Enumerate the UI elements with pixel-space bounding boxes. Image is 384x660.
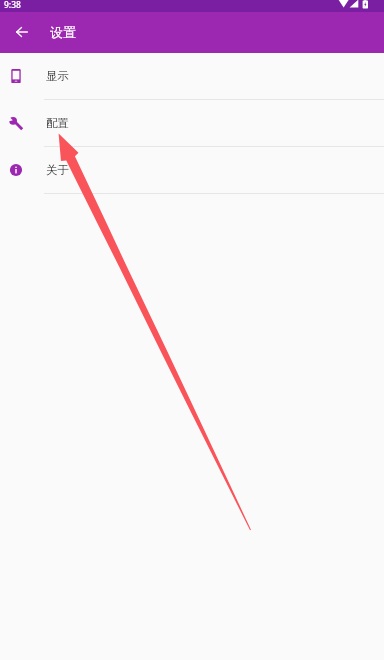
staticText: 显示 — [46, 69, 69, 83]
other: Configure — [0, 116, 32, 130]
button[interactable]: Display — [0, 53, 384, 99]
button[interactable]: Back — [11, 22, 33, 44]
staticText: 设置 — [50, 24, 76, 40]
other: About — [0, 163, 32, 177]
other: Display — [0, 69, 32, 83]
button[interactable]: Configure — [0, 100, 384, 146]
staticText: 9:38 — [4, 0, 21, 11]
staticText: 关于 — [46, 163, 69, 177]
button[interactable]: About — [0, 147, 384, 193]
staticText: 配置 — [46, 116, 69, 130]
